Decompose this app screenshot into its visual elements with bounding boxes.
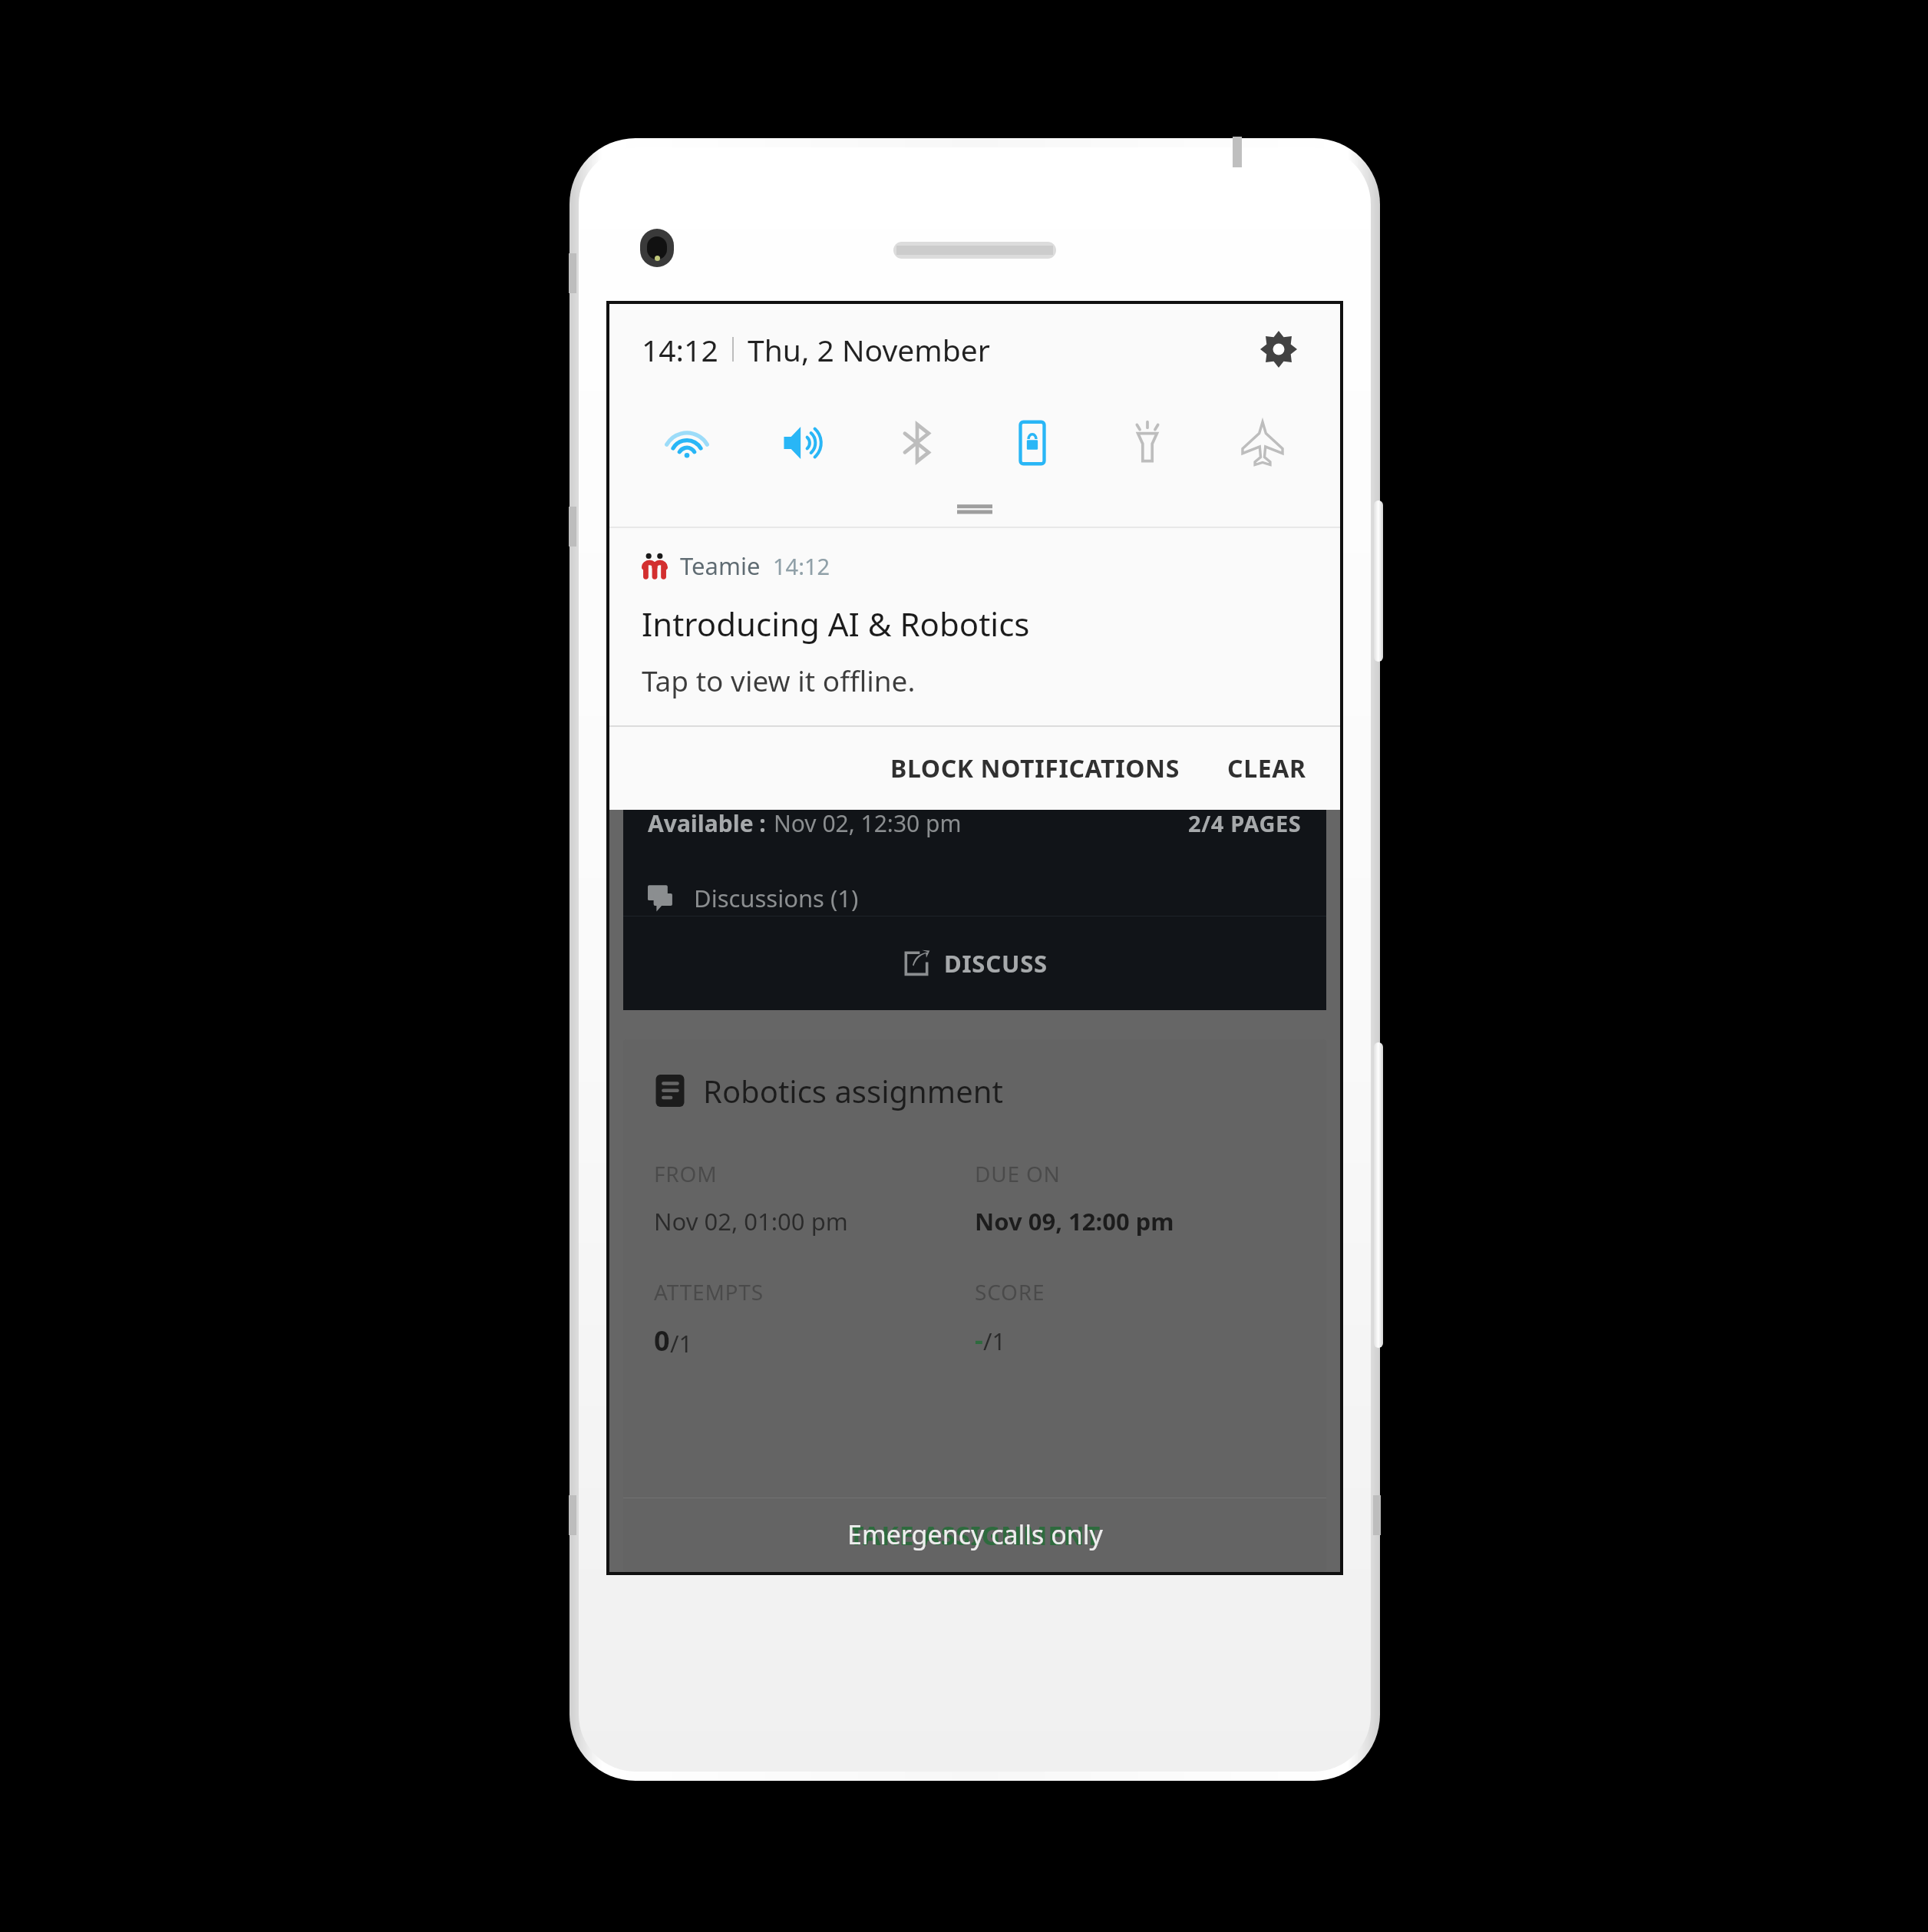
button[interactable]: Introducing AI & Robotics (623, 680, 1326, 1010)
staticText: SCORE (975, 1277, 1045, 1306)
staticText: ATTEMPTS (654, 1277, 764, 1306)
staticText: Discussions (1) (694, 882, 859, 914)
staticText: Introducing AI & Robotics (639, 657, 1027, 701)
staticText: FROM (654, 1159, 718, 1188)
button[interactable]: Flashlight (1090, 395, 1205, 491)
button[interactable]: TAKE ASSIGNMENT (623, 1498, 1326, 1572)
staticText: Tap to view it offline. (642, 661, 916, 699)
staticText: Robotics assignment (703, 1070, 1003, 1111)
button[interactable]: Robotics assignment (623, 1039, 1326, 1572)
staticText: DUE ON (975, 1159, 1061, 1188)
button[interactable]: Auto rotate (975, 395, 1090, 491)
staticText: Thu, 2 November (748, 329, 990, 370)
staticText: CLEAR (1227, 751, 1306, 785)
staticText: BLOCK NOTIFICATIONS (890, 751, 1180, 785)
staticText: 14:12 (773, 551, 830, 581)
button[interactable]: Airplane mode (1205, 395, 1320, 491)
staticText: TAKE ASSIGNMENT (849, 1518, 1101, 1553)
staticText: 14:12 (642, 329, 718, 370)
staticText: 2/4 PAGES (1188, 808, 1302, 838)
staticText: DISCUSS (944, 947, 1048, 979)
staticText: Emergency calls only (847, 1517, 1103, 1552)
button[interactable]: Discussions (1) (648, 882, 1302, 914)
staticText: Nov 02, 12:30 pm (774, 807, 962, 839)
staticText: Introducing AI & Robotics (642, 602, 1030, 646)
button[interactable]: Sound (744, 395, 860, 491)
button[interactable]: BLOCK NOTIFICATIONS (873, 741, 1197, 796)
staticText: Nov 02, 01:00 pm (654, 1205, 848, 1237)
button[interactable]: Bluetooth (860, 395, 975, 491)
staticText: - (975, 1322, 983, 1357)
staticText: /1 (983, 1325, 1006, 1357)
button[interactable]: Settings (1250, 320, 1308, 378)
staticText: Nov 09, 12:00 pm (975, 1205, 1174, 1237)
staticText: 0 (654, 1322, 670, 1359)
staticText: Teamie (680, 550, 761, 582)
button[interactable]: Teamie (609, 528, 1340, 725)
button[interactable]: Wi-Fi (629, 395, 744, 491)
button[interactable]: CLEAR (1210, 741, 1323, 796)
staticText: Available : (648, 807, 766, 839)
button[interactable]: DISCUSS (623, 916, 1326, 1010)
staticText: /1 (670, 1327, 693, 1359)
